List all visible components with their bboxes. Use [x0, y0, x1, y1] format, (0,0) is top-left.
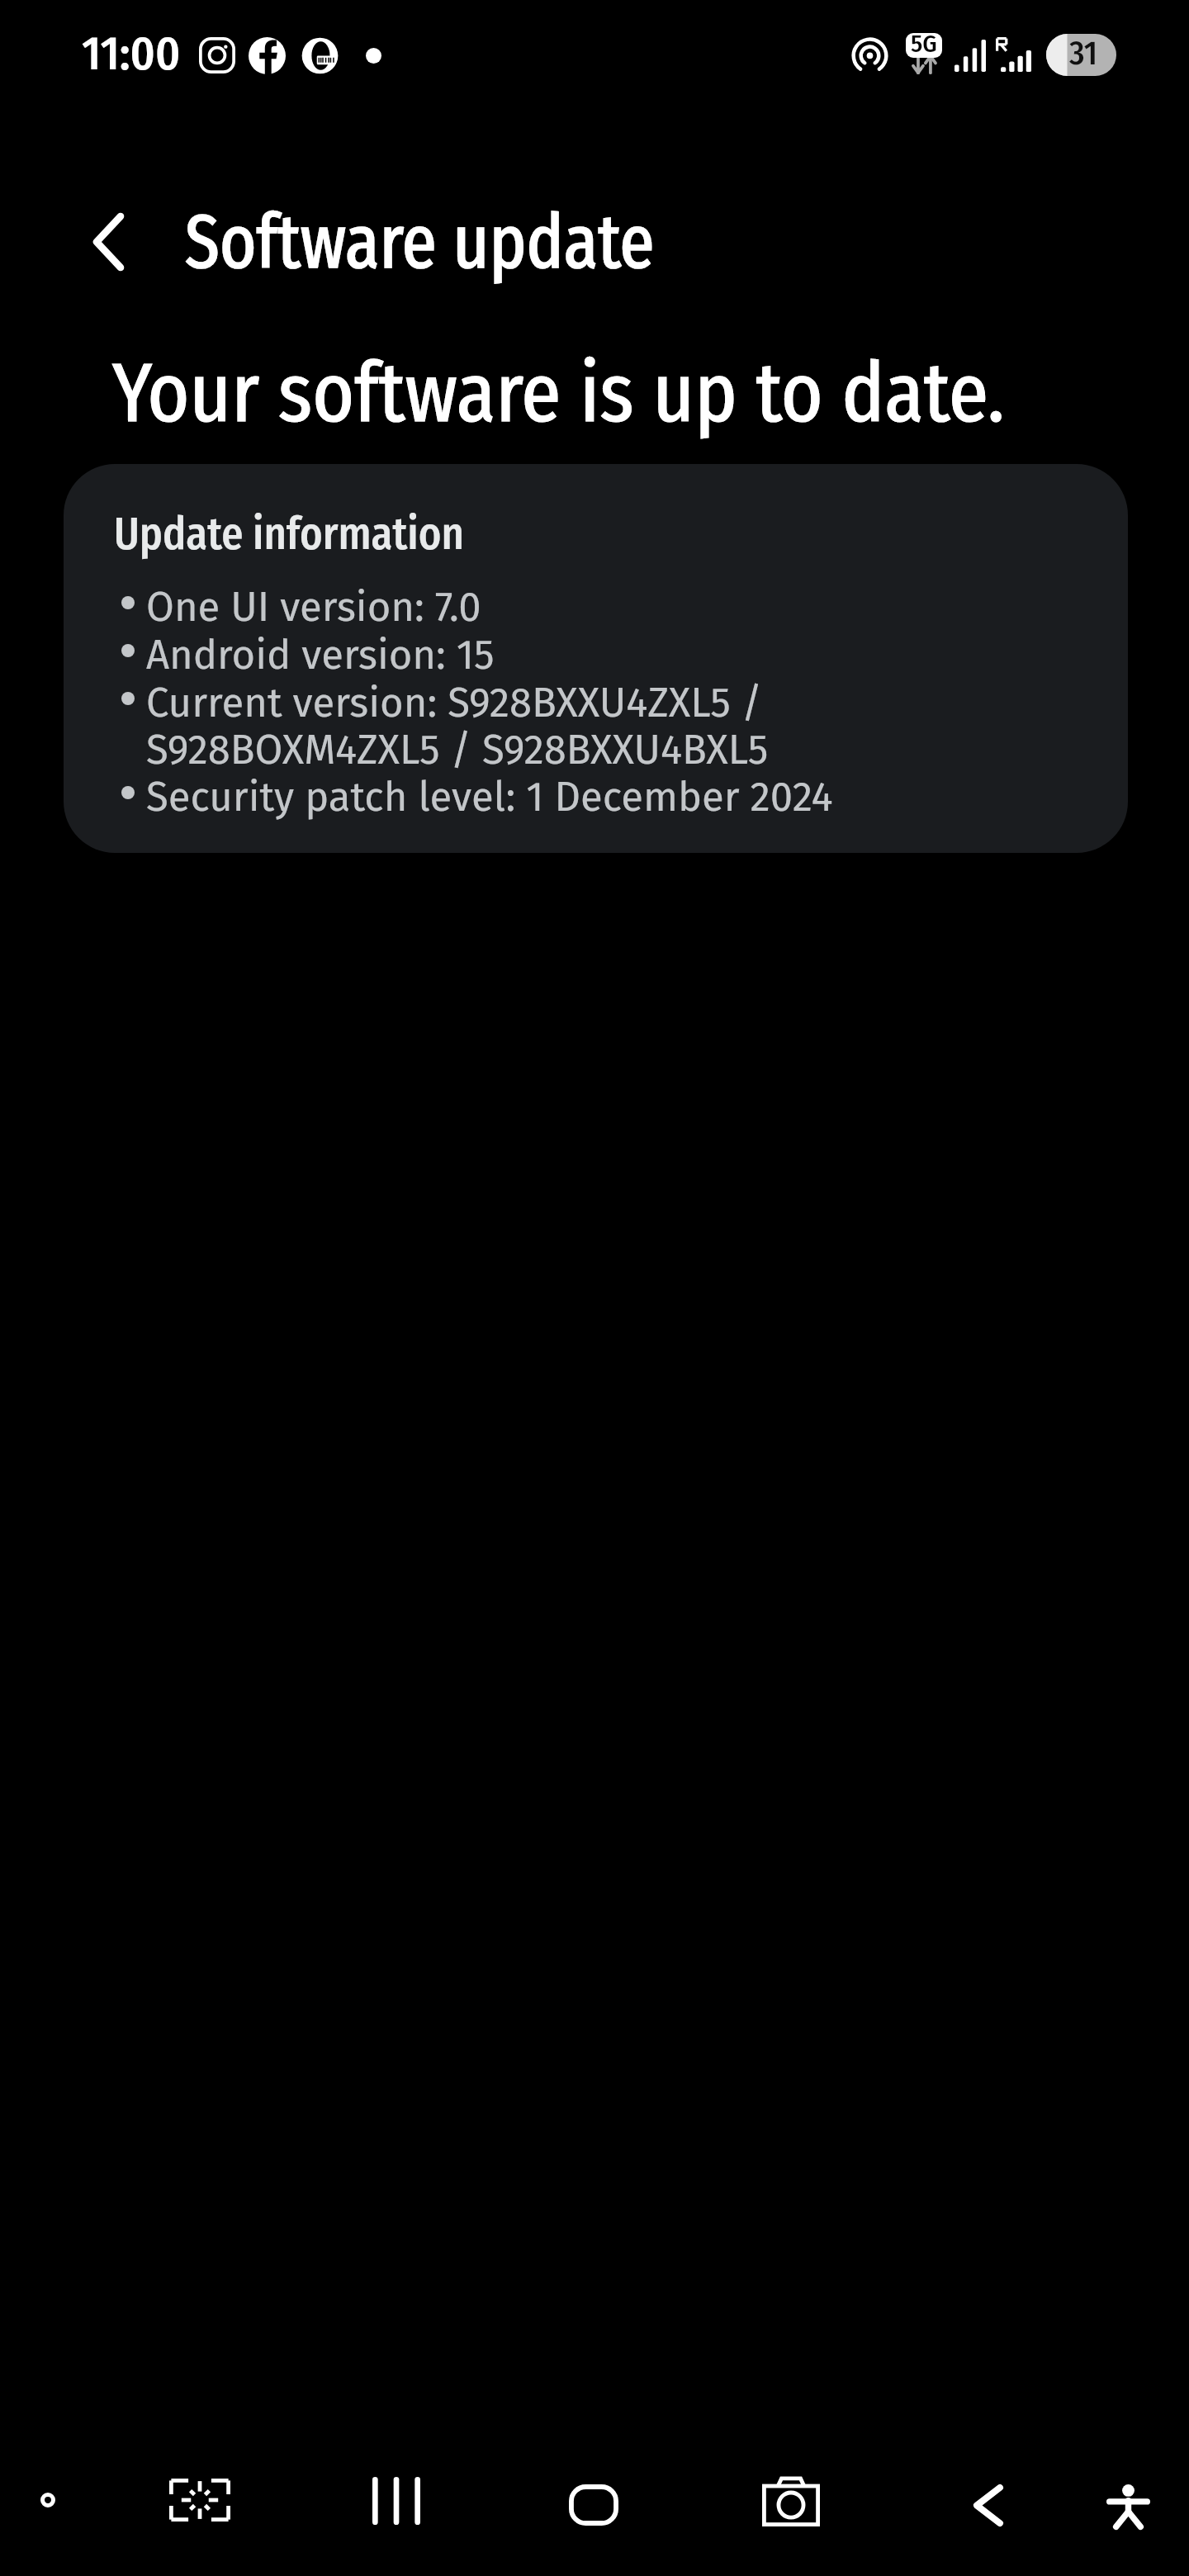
button[interactable]: Navigate up: [49, 182, 168, 301]
button[interactable]: Camera: [740, 2451, 842, 2553]
staticText: Security patch level: 1 December 2024: [146, 774, 1030, 821]
button[interactable]: Screenshot: [149, 2449, 251, 2551]
staticText: Your software is up to date.: [112, 349, 1005, 442]
staticText: 5G: [911, 33, 937, 57]
button[interactable]: Update information: [64, 464, 1128, 853]
button[interactable]: Home: [542, 2454, 645, 2556]
staticText: Software update: [185, 203, 655, 286]
staticText: One UI version: 7.0: [146, 584, 1030, 631]
staticText: Android version: 15: [146, 632, 1030, 679]
staticText: Software update: [185, 203, 655, 286]
button[interactable]: Accessibility: [1077, 2455, 1179, 2558]
staticText: Your software is up to date.: [112, 349, 1005, 442]
staticText: 31: [1069, 36, 1097, 72]
button[interactable]: Back: [937, 2454, 1040, 2556]
staticText: 11:00: [82, 32, 181, 80]
button[interactable]: Recent apps: [345, 2450, 448, 2552]
staticText: Current version: S928BXXU4ZXL5 / S928BOX…: [146, 680, 1030, 774]
button[interactable]: Recording indicator: [12, 2465, 83, 2536]
staticText: Update information: [114, 509, 465, 561]
